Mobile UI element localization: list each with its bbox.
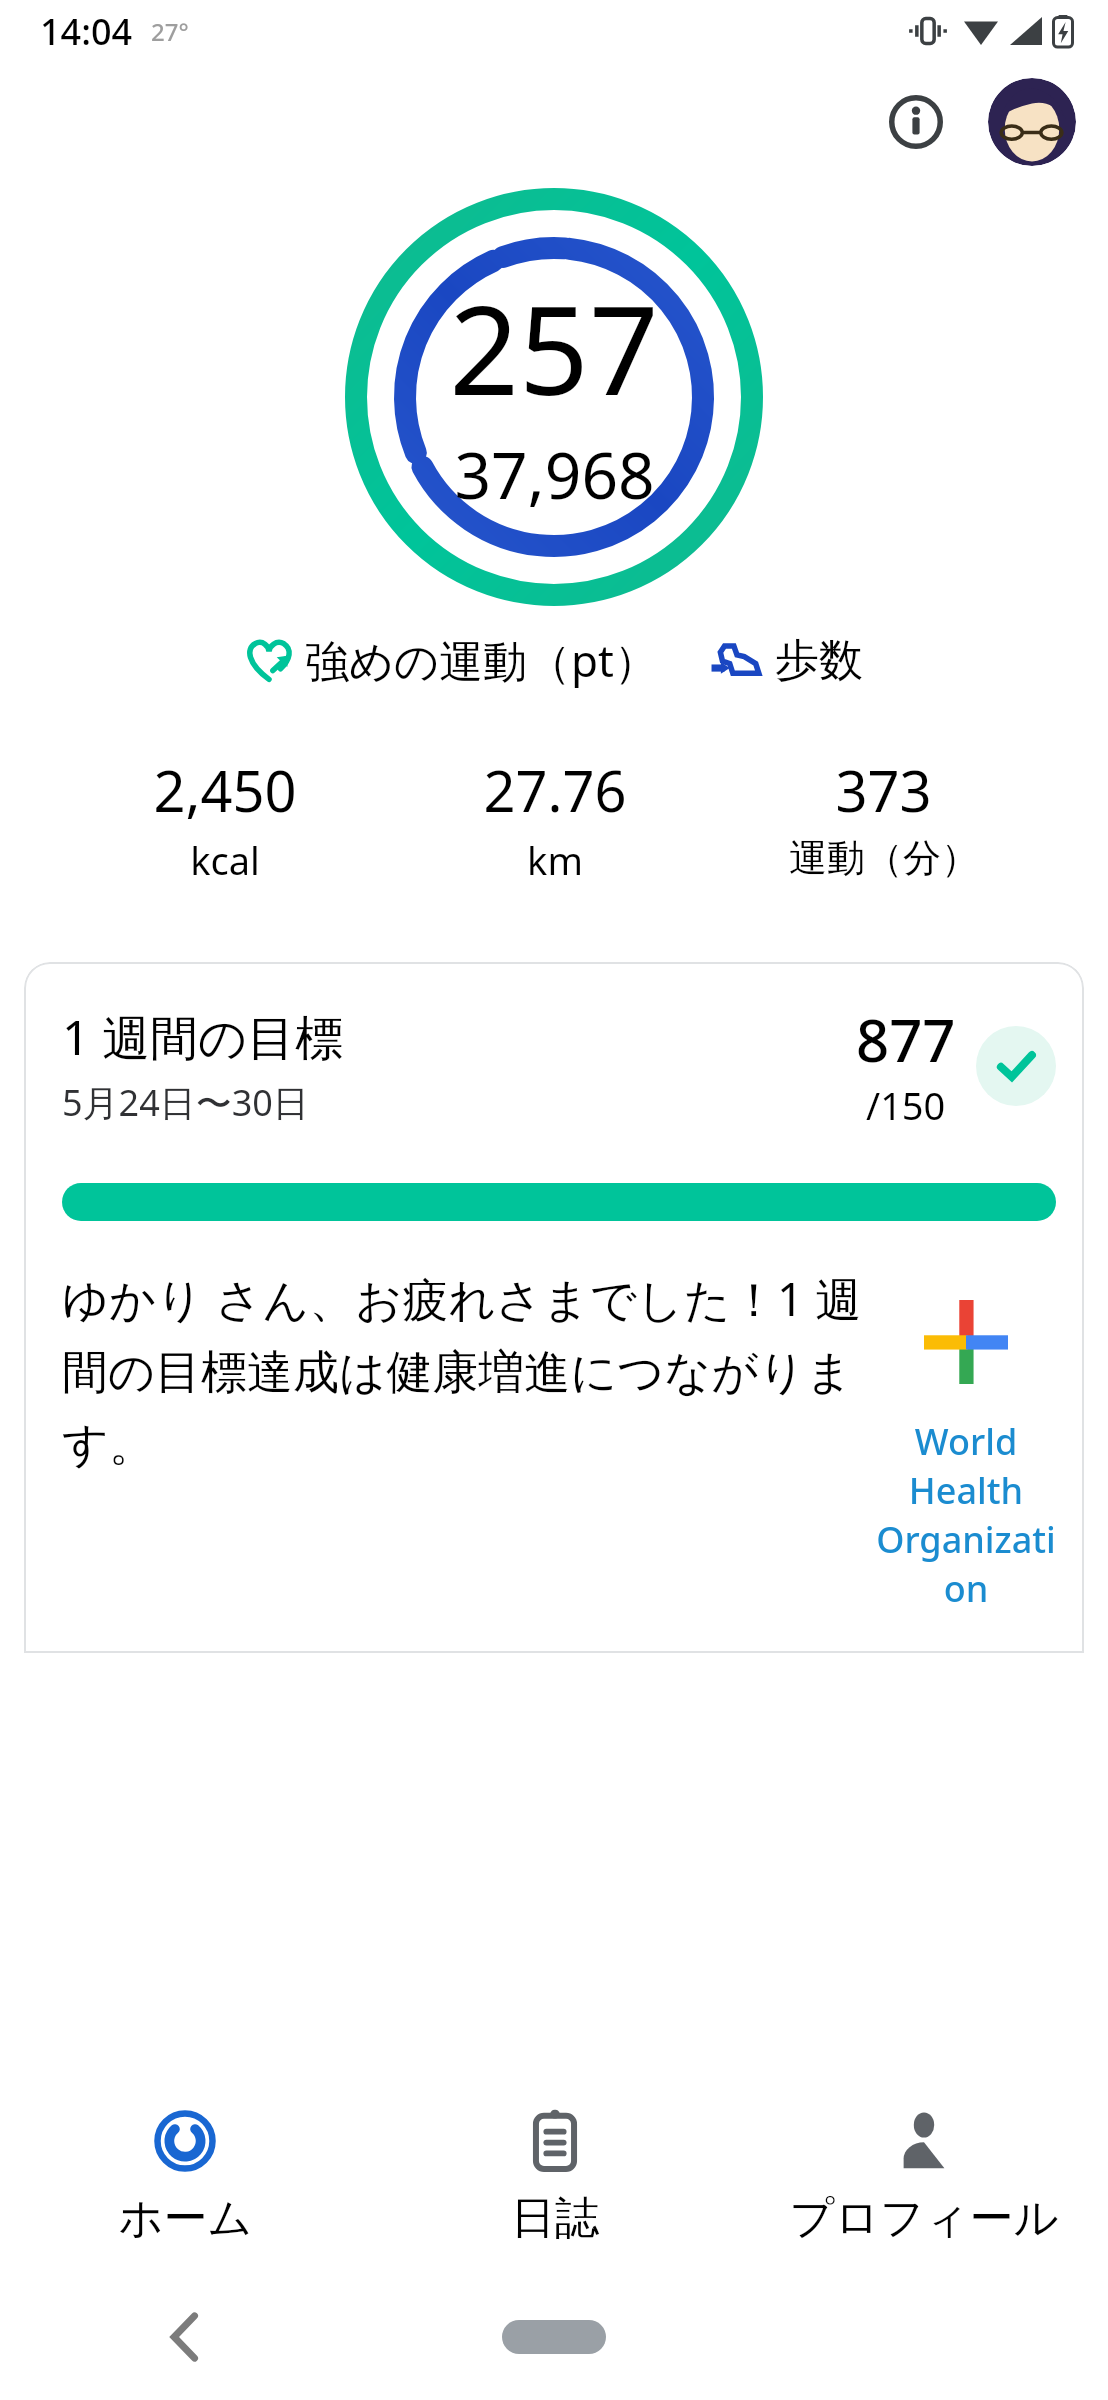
staticText: 37,968 <box>454 431 655 518</box>
button[interactable]: 373 <box>719 752 1048 882</box>
button[interactable]: World Health Organization <box>876 1267 1056 1613</box>
button[interactable]: ホーム <box>0 2078 370 2274</box>
staticText: kcal <box>190 834 260 886</box>
staticText: km <box>527 834 583 886</box>
staticText: Organization <box>876 1515 1056 1613</box>
button[interactable]: 2,450 <box>60 752 390 886</box>
staticText: ホーム <box>118 2191 253 2246</box>
staticText: 5月24日〜30日 <box>62 1078 309 1127</box>
staticText: 257 <box>449 265 659 431</box>
staticText: 歩数 <box>775 633 863 688</box>
staticText: World Health <box>876 1417 1056 1515</box>
staticText: 27° <box>151 15 189 48</box>
staticText: 373 <box>835 752 932 828</box>
button[interactable]: Information <box>874 80 958 164</box>
button[interactable]: 歩数 <box>711 633 863 688</box>
button[interactable]: 1 週間の目標 <box>24 962 1084 1653</box>
staticText: 日誌 <box>511 2191 599 2246</box>
button[interactable]: プロフィール <box>739 2078 1108 2274</box>
staticText: 877 <box>856 1000 956 1079</box>
staticText: 1 週間の目標 <box>62 1004 344 1070</box>
staticText: プロフィール <box>789 2191 1059 2246</box>
staticText: 運動（分） <box>789 834 979 882</box>
button[interactable]: 日誌 <box>370 2078 739 2274</box>
staticText: 2,450 <box>153 752 297 828</box>
staticText: /150 <box>866 1079 946 1131</box>
staticText: ゆかり さん、お疲れさまでした！1 週間の目標達成は健康増進につながります。 <box>62 1267 876 1473</box>
button[interactable]: 強めの運動（pt） <box>245 630 659 690</box>
other: Back <box>168 2313 202 2361</box>
staticText: 14:04 <box>40 7 133 56</box>
staticText: 強めの運動（pt） <box>305 630 659 690</box>
button[interactable]: Profile <box>986 76 1078 168</box>
button[interactable]: 27.76 <box>390 752 719 886</box>
button[interactable]: Daily activity rings <box>344 187 764 607</box>
staticText: 27.76 <box>483 752 627 828</box>
